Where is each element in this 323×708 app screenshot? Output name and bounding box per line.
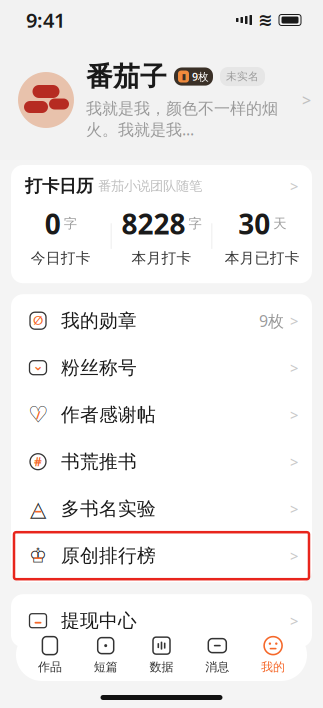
staticText: 原创排行榜 [61, 544, 156, 567]
staticText: 番茄子 [86, 60, 167, 93]
button[interactable]: 消息 [189, 631, 245, 679]
staticText: 短篇 [94, 660, 118, 674]
staticText: > [290, 405, 298, 424]
staticText: ⌄ [32, 358, 43, 373]
staticText: > [290, 611, 298, 630]
staticText: 本月已打卡 [225, 249, 300, 267]
staticText: 我的 [261, 660, 285, 674]
staticText: 未实名 [226, 70, 259, 83]
staticText: / [36, 408, 40, 422]
button[interactable]: 我的 [245, 631, 301, 679]
staticText: > [290, 311, 298, 330]
staticText: 书荒推书 [61, 450, 137, 473]
staticText: > [290, 546, 298, 565]
staticText: 本月打卡 [131, 249, 191, 267]
button[interactable]: △ [11, 485, 312, 532]
button[interactable]: 作品 [22, 631, 78, 679]
staticText: > [302, 89, 311, 111]
staticText: 字 [64, 215, 77, 232]
staticText: 番茄小说团队随笔 [98, 178, 202, 194]
staticText: 字 [188, 215, 201, 232]
staticText: 作品 [38, 660, 62, 674]
staticText: > [290, 499, 298, 518]
staticText: > [290, 452, 298, 471]
staticText: 天 [273, 215, 286, 232]
button[interactable]: ⌄ [11, 344, 312, 391]
staticText: 我就是我，颜色不一样的烟火。我就是我... [86, 99, 278, 140]
button[interactable]: ∅ [11, 297, 312, 344]
staticText: 今日打卡 [31, 249, 91, 267]
staticText: # [34, 454, 42, 470]
staticText: 0 [45, 205, 61, 242]
button[interactable]: ♡ [11, 391, 312, 438]
staticText: 多书名实验 [61, 497, 156, 520]
staticText: 提现中心 [61, 609, 137, 632]
button[interactable]: # [11, 438, 312, 485]
button[interactable]: 提现中心 [11, 597, 312, 644]
button[interactable]: 短篇 [78, 631, 134, 679]
staticText: 9枚 [192, 69, 209, 84]
button[interactable]: ♔ [11, 532, 312, 579]
button[interactable]: 打卡日历 [11, 165, 312, 201]
staticText: ≋ [258, 10, 273, 30]
staticText: ▮ [181, 72, 185, 81]
staticText: > [290, 358, 298, 377]
staticText: 数据 [149, 660, 173, 674]
staticText: 9:41 [26, 7, 65, 33]
staticText: ∅ [33, 314, 43, 327]
button[interactable]: 数据 [134, 631, 189, 679]
staticText: 消息 [205, 660, 229, 674]
staticText: 30 [238, 205, 270, 242]
staticText: 我的勋章 [61, 309, 137, 332]
staticText: ♡ [28, 402, 48, 427]
staticText: > [290, 176, 298, 196]
staticText: ♔ [29, 544, 47, 567]
staticText: 打卡日历 [25, 175, 93, 197]
staticText: △ [30, 497, 46, 521]
button[interactable]: 番茄子 [0, 57, 323, 143]
staticText: 9枚 [259, 310, 284, 331]
staticText: 8228 [121, 205, 185, 242]
staticText: 作者感谢帖 [61, 403, 156, 426]
staticText: 粉丝称号 [61, 356, 137, 379]
